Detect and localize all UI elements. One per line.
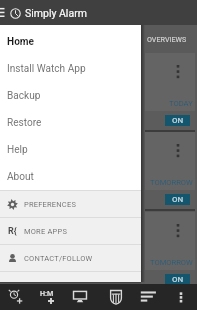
staticText: TODAY	[169, 99, 193, 108]
button[interactable]: Open navigation drawer	[0, 0, 10, 25]
button[interactable]: R{	[0, 218, 141, 244]
button[interactable]: Add alarm	[1, 284, 31, 310]
button[interactable]: Screensaver	[65, 284, 95, 310]
button[interactable]: ON	[165, 194, 190, 205]
staticText: Install Watch App	[7, 63, 86, 75]
button[interactable]: Home	[0, 28, 141, 55]
button[interactable]: Add timer	[33, 284, 63, 310]
button[interactable]: Sort	[133, 284, 163, 310]
button[interactable]: ON	[165, 274, 190, 285]
button[interactable]: Help	[0, 136, 141, 163]
staticText: TOMORROW	[150, 178, 193, 187]
staticText: R{	[8, 226, 17, 237]
button[interactable]: More options	[166, 284, 196, 310]
staticText: Home	[7, 36, 35, 48]
button[interactable]: PREFERENCES	[0, 191, 141, 217]
staticText: About	[7, 171, 34, 183]
staticText: Simply Alarm	[25, 7, 87, 19]
staticText: H:M	[40, 289, 54, 297]
staticText: Help	[7, 144, 28, 156]
button[interactable]: TOMORROW	[145, 132, 195, 211]
button[interactable]: ON	[165, 115, 190, 126]
staticText: ON	[172, 116, 184, 125]
button[interactable]: Shield	[101, 284, 131, 310]
staticText: CONTACT/FOLLOW	[24, 254, 93, 263]
staticText: Restore	[7, 117, 42, 129]
staticText: PREFERENCES	[24, 200, 77, 209]
button[interactable]: Backup	[0, 82, 141, 109]
staticText: ON	[172, 275, 184, 284]
button[interactable]: TOMORROW	[145, 212, 195, 291]
button[interactable]: CONTACT/FOLLOW	[0, 245, 141, 271]
staticText: OVERVIEWS	[147, 35, 187, 43]
staticText: Backup	[7, 90, 41, 102]
staticText: ON	[172, 195, 184, 204]
button[interactable]: Install Watch App	[0, 55, 141, 82]
staticText: MORE APPS	[24, 227, 68, 236]
button[interactable]: TODAY	[145, 53, 195, 132]
staticText: TOMORROW	[150, 258, 193, 267]
button[interactable]: Restore	[0, 109, 141, 136]
button[interactable]: About	[0, 163, 141, 190]
